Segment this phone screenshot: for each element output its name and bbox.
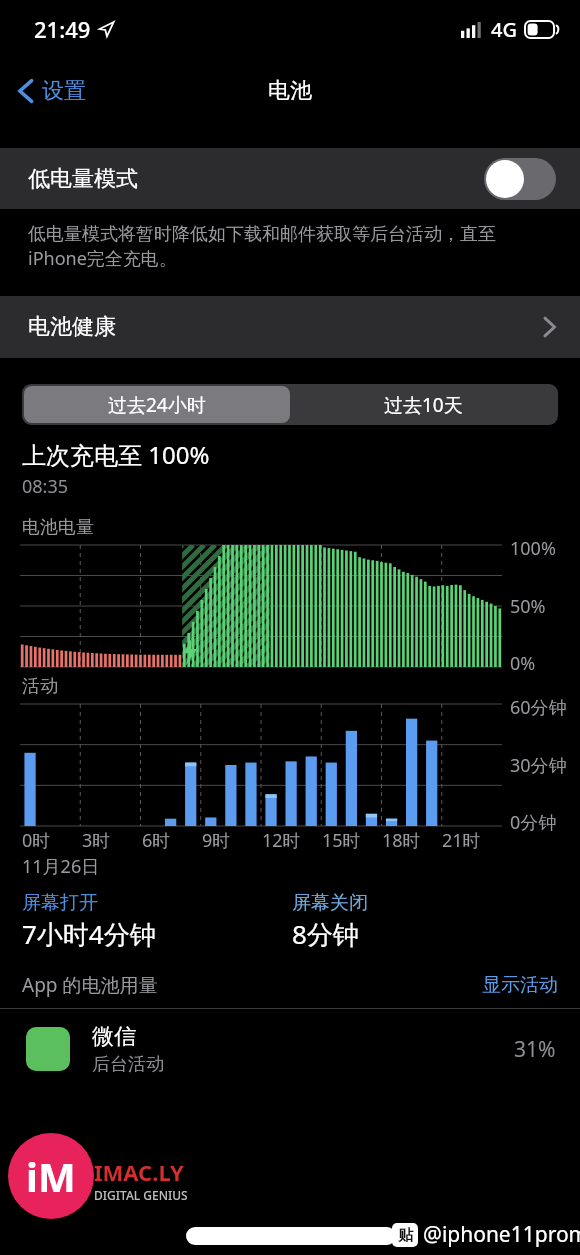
staticText: 21:49 bbox=[34, 14, 91, 44]
staticText: 08:35 bbox=[22, 474, 69, 499]
staticText: 微信 bbox=[92, 1023, 136, 1051]
staticText: 设置 bbox=[42, 77, 86, 105]
staticText: 7小时4分钟 bbox=[22, 916, 156, 952]
staticText: 15时 bbox=[322, 828, 361, 853]
staticText: 电池健康 bbox=[28, 313, 116, 341]
staticText: 过去10天 bbox=[384, 392, 463, 418]
staticText: 21时 bbox=[442, 828, 481, 853]
button[interactable]: 过去24小时 bbox=[24, 386, 290, 423]
staticText: 上次充电至 100% bbox=[22, 438, 210, 471]
staticText: 12时 bbox=[262, 828, 301, 853]
staticText: 0% bbox=[510, 651, 536, 676]
staticText: 低电量模式 bbox=[28, 165, 138, 193]
staticText: 3时 bbox=[82, 828, 111, 853]
staticText: IMAC.LY bbox=[94, 1157, 184, 1187]
button[interactable]: 过去10天 bbox=[290, 386, 556, 423]
button[interactable]: 设置 bbox=[10, 71, 94, 111]
staticText: 后台活动 bbox=[92, 1053, 164, 1076]
staticText: 4G bbox=[491, 16, 517, 43]
staticText: 18时 bbox=[382, 828, 421, 853]
staticText: 31% bbox=[514, 1035, 556, 1064]
button[interactable]: Low Power Mode toggle bbox=[484, 158, 556, 200]
staticText: @iphone11promax吧 bbox=[423, 1220, 580, 1249]
staticText: 60分钟 bbox=[510, 695, 567, 720]
staticText: 电池 bbox=[268, 77, 312, 105]
staticText: 0分钟 bbox=[510, 810, 557, 835]
staticText: 活动 bbox=[22, 675, 58, 698]
staticText: 100% bbox=[510, 536, 556, 561]
staticText: 6时 bbox=[142, 828, 171, 853]
button[interactable]: 显示活动 bbox=[482, 973, 558, 997]
staticText: iM bbox=[26, 1149, 76, 1203]
staticText: 0时 bbox=[22, 828, 51, 853]
staticText: 50% bbox=[510, 594, 546, 619]
staticText: DIGITAL GENIUS bbox=[94, 1187, 188, 1203]
button[interactable]: 微信 bbox=[0, 1009, 580, 1089]
button[interactable]: 电池健康 bbox=[0, 296, 580, 358]
staticText: 电池电量 bbox=[22, 516, 94, 539]
staticText: 9时 bbox=[202, 828, 231, 853]
staticText: App 的电池用量 bbox=[22, 972, 158, 998]
staticText: 显示活动 bbox=[482, 973, 558, 997]
button[interactable]: 低电量模式 bbox=[0, 148, 580, 209]
staticText: 贴 bbox=[398, 1226, 413, 1245]
staticText: 屏幕关闭 bbox=[292, 891, 368, 915]
staticText: 30分钟 bbox=[510, 753, 567, 778]
staticText: 低电量模式将暂时降低如下载和邮件获取等后台活动，直至 iPhone完全充电。 bbox=[28, 221, 550, 271]
staticText: 8分钟 bbox=[292, 916, 359, 952]
staticText: 过去24小时 bbox=[108, 392, 206, 418]
staticText: 屏幕打开 bbox=[22, 891, 98, 915]
staticText: 11月26日 bbox=[22, 854, 100, 879]
